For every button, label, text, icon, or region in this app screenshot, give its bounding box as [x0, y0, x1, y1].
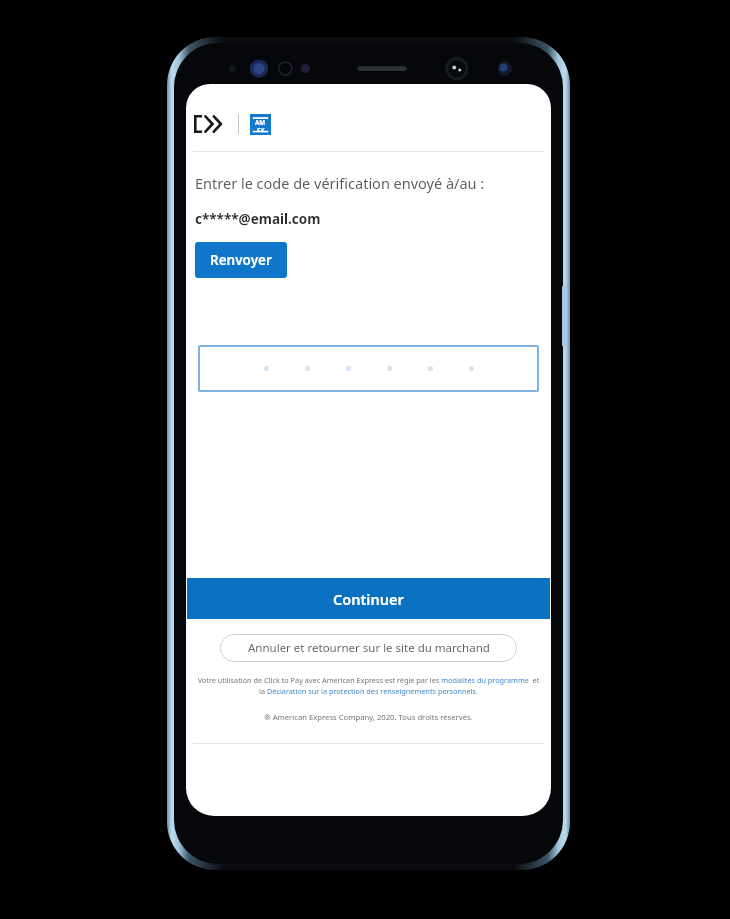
button[interactable]: Continuer	[187, 578, 550, 619]
button[interactable]: Annuler et retourner sur le site du marc…	[220, 634, 517, 662]
staticText: ® American Express Company, 2020. Tous d…	[186, 712, 551, 722]
staticText: Renvoyer	[210, 251, 272, 269]
button[interactable]: Champ du code de vérification	[198, 345, 539, 392]
staticText: Votre utilisation de Click to Pay avec A…	[194, 675, 543, 696]
staticText: Entrer le code de vérification envoyé à/…	[195, 173, 485, 193]
button[interactable]: Renvoyer	[195, 242, 287, 278]
staticText: Annuler et retourner sur le site du marc…	[248, 640, 490, 656]
staticText: c*****@email.com	[195, 210, 321, 228]
staticText: Continuer	[333, 589, 404, 609]
staticText: AM	[255, 118, 266, 126]
staticText: EX	[257, 126, 265, 131]
